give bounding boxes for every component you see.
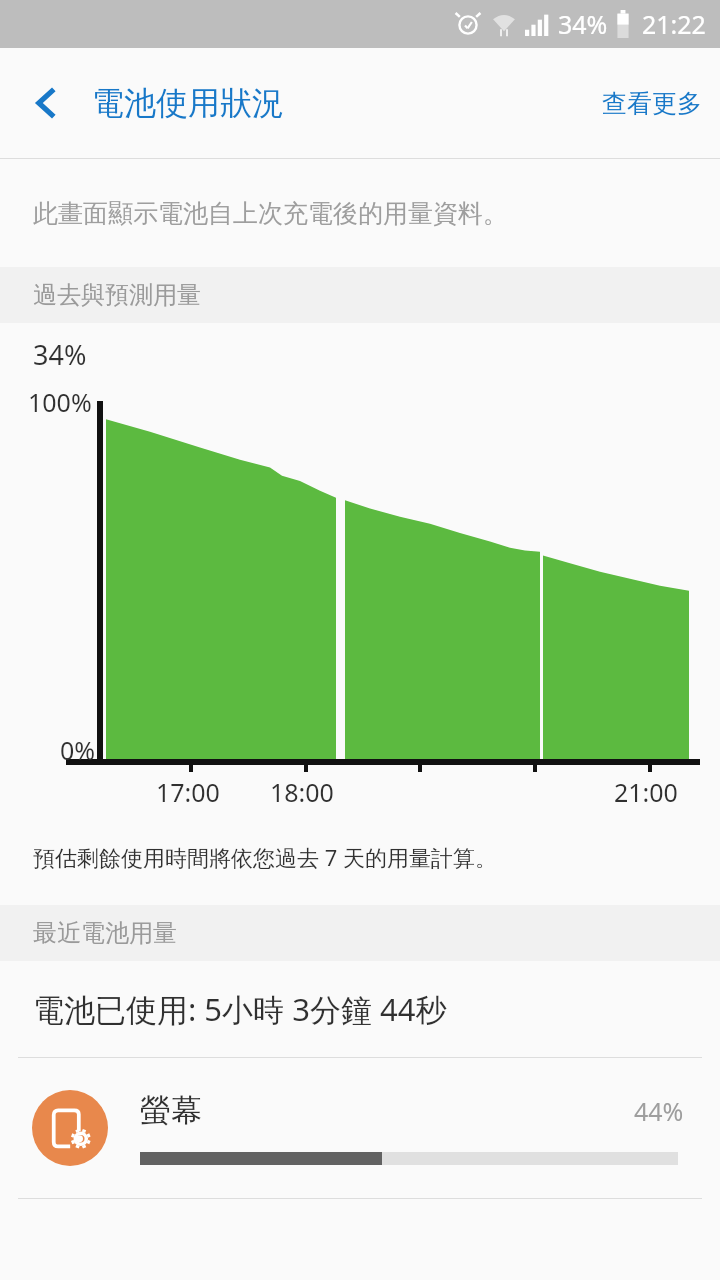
staticText: 100% <box>28 385 92 419</box>
staticText: 最近電池用量 <box>33 918 177 948</box>
staticText: 21:22 <box>642 7 706 41</box>
staticText: 21:00 <box>614 775 678 809</box>
staticText: 18:00 <box>270 775 334 809</box>
button[interactable]: Back <box>14 70 80 136</box>
staticText: 0% <box>60 733 96 767</box>
staticText: 查看更多 <box>602 88 702 119</box>
staticText: 過去與預測用量 <box>33 280 201 310</box>
staticText: 螢幕 <box>140 1091 634 1130</box>
staticText: 此畫面顯示電池自上次充電後的用量資料。 <box>33 198 508 229</box>
staticText: 電池使用狀況 <box>92 83 284 123</box>
staticText: 電池已使用: 5小時 3分鐘 44秒 <box>33 988 447 1030</box>
staticText: 預估剩餘使用時間將依您過去 7 天的用量計算。 <box>33 842 498 872</box>
button[interactable]: 查看更多 <box>584 70 720 137</box>
staticText: 34% <box>558 7 608 41</box>
staticText: 44% <box>634 1094 684 1128</box>
button[interactable]: 螢幕 <box>0 1058 720 1198</box>
staticText: 34% <box>33 336 87 373</box>
staticText: 17:00 <box>156 775 220 809</box>
